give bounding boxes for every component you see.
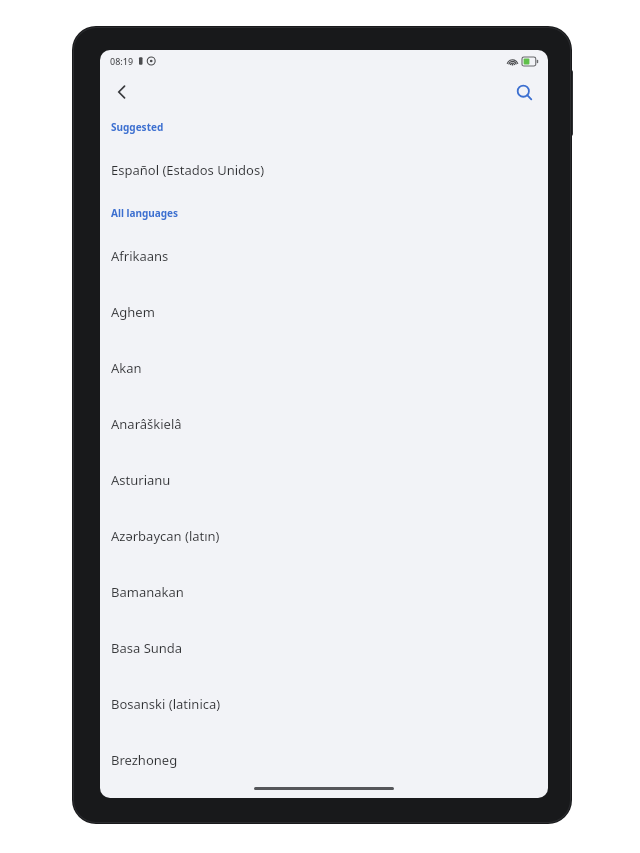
button[interactable]: Brezhoneg [100,732,548,778]
staticText: All languages [111,206,179,220]
staticText: Asturianu [111,471,171,489]
button[interactable]: Afrikaans [100,228,548,284]
staticText: Anarâškielâ [111,415,182,433]
button[interactable]: Basa Sunda [100,620,548,676]
staticText: Brezhoneg [111,751,178,769]
staticText: Español (Estados Unidos) [111,161,265,179]
button[interactable]: Search [506,74,542,110]
staticText: Aghem [111,303,155,321]
button[interactable]: Akan [100,340,548,396]
staticText: Basa Sunda [111,639,183,657]
staticText: 08:19 [110,55,134,67]
button[interactable]: Aghem [100,284,548,340]
staticText: Bosanski (latinica) [111,695,221,713]
button[interactable]: Asturianu [100,452,548,508]
button[interactable]: Bosanski (latinica) [100,676,548,732]
button[interactable]: Bamanakan [100,564,548,620]
button[interactable]: Azərbaycan (latın) [100,508,548,564]
button[interactable]: Anarâškielâ [100,396,548,452]
button[interactable]: Back [104,74,140,110]
staticText: Akan [111,359,142,377]
staticText: Suggested [111,120,164,134]
button[interactable]: Español (Estados Unidos) [100,142,548,198]
staticText: Azərbaycan (latın) [111,527,220,545]
staticText: Bamanakan [111,583,184,601]
staticText: Afrikaans [111,247,169,265]
